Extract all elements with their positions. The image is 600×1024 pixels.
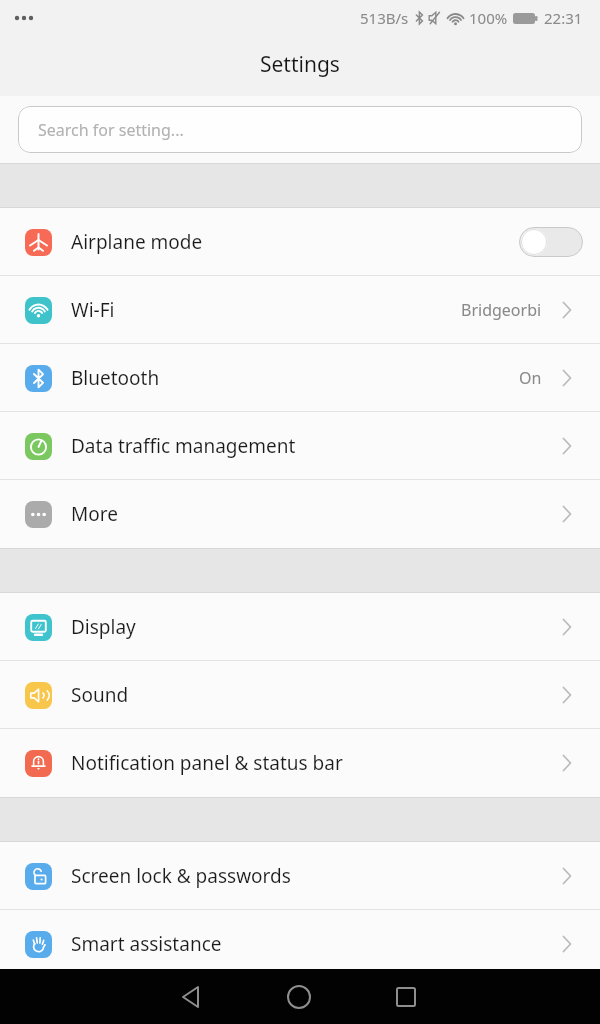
staticText: 100% xyxy=(469,8,508,28)
staticText: Bridgeorbi xyxy=(461,299,542,321)
button[interactable]: Display xyxy=(0,593,600,661)
staticText: Settings xyxy=(260,50,340,79)
staticText: Smart assistance xyxy=(71,931,222,957)
button[interactable]: Search for setting... xyxy=(18,106,582,153)
staticText: 22:31 xyxy=(544,8,583,28)
staticText: Bluetooth xyxy=(71,365,160,391)
staticText: More xyxy=(71,501,118,527)
staticText: Data traffic management xyxy=(71,433,296,459)
staticText: Notification panel & status bar xyxy=(71,750,343,776)
button[interactable]: More xyxy=(0,480,600,548)
button[interactable] xyxy=(275,973,323,1021)
button[interactable] xyxy=(382,973,430,1021)
staticText: Sound xyxy=(71,682,129,708)
staticText: Screen lock & passwords xyxy=(71,863,291,889)
staticText: Airplane mode xyxy=(71,229,203,255)
staticText: Wi-Fi xyxy=(71,297,115,323)
button[interactable]: Screen lock & passwords xyxy=(0,842,600,910)
button[interactable] xyxy=(519,227,583,257)
button[interactable]: Notification panel & status bar xyxy=(0,729,600,797)
button[interactable]: Wi-Fi xyxy=(0,276,600,344)
staticText: 513B/s xyxy=(360,8,409,28)
button[interactable]: Bluetooth xyxy=(0,344,600,412)
button[interactable]: Data traffic management xyxy=(0,412,600,480)
button[interactable] xyxy=(168,973,216,1021)
button[interactable]: Sound xyxy=(0,661,600,729)
staticText: Search for setting... xyxy=(38,119,184,141)
staticText: Display xyxy=(71,614,136,640)
button[interactable]: Airplane mode xyxy=(0,208,600,276)
button[interactable]: Smart assistance xyxy=(0,910,600,978)
staticText: On xyxy=(519,367,542,389)
